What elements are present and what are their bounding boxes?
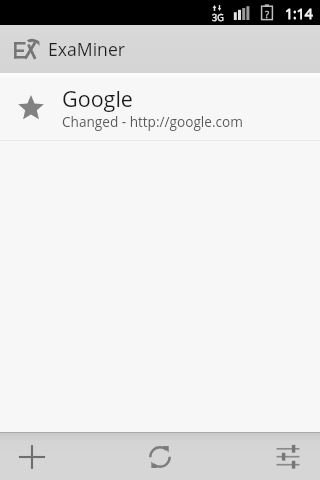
button[interactable]: Settings <box>264 433 312 480</box>
staticText: ExaMiner <box>48 37 125 61</box>
staticText: 1:14 <box>285 4 313 23</box>
staticText: 3G <box>212 11 224 23</box>
button[interactable]: Refresh <box>136 433 184 480</box>
button[interactable]: Add <box>8 433 56 480</box>
button[interactable]: ExaMiner <box>0 25 320 73</box>
staticText: ? <box>265 8 270 21</box>
staticText: Google <box>62 84 133 113</box>
button[interactable]: Google <box>0 73 320 141</box>
staticText: Changed - http://google.com <box>62 112 243 131</box>
